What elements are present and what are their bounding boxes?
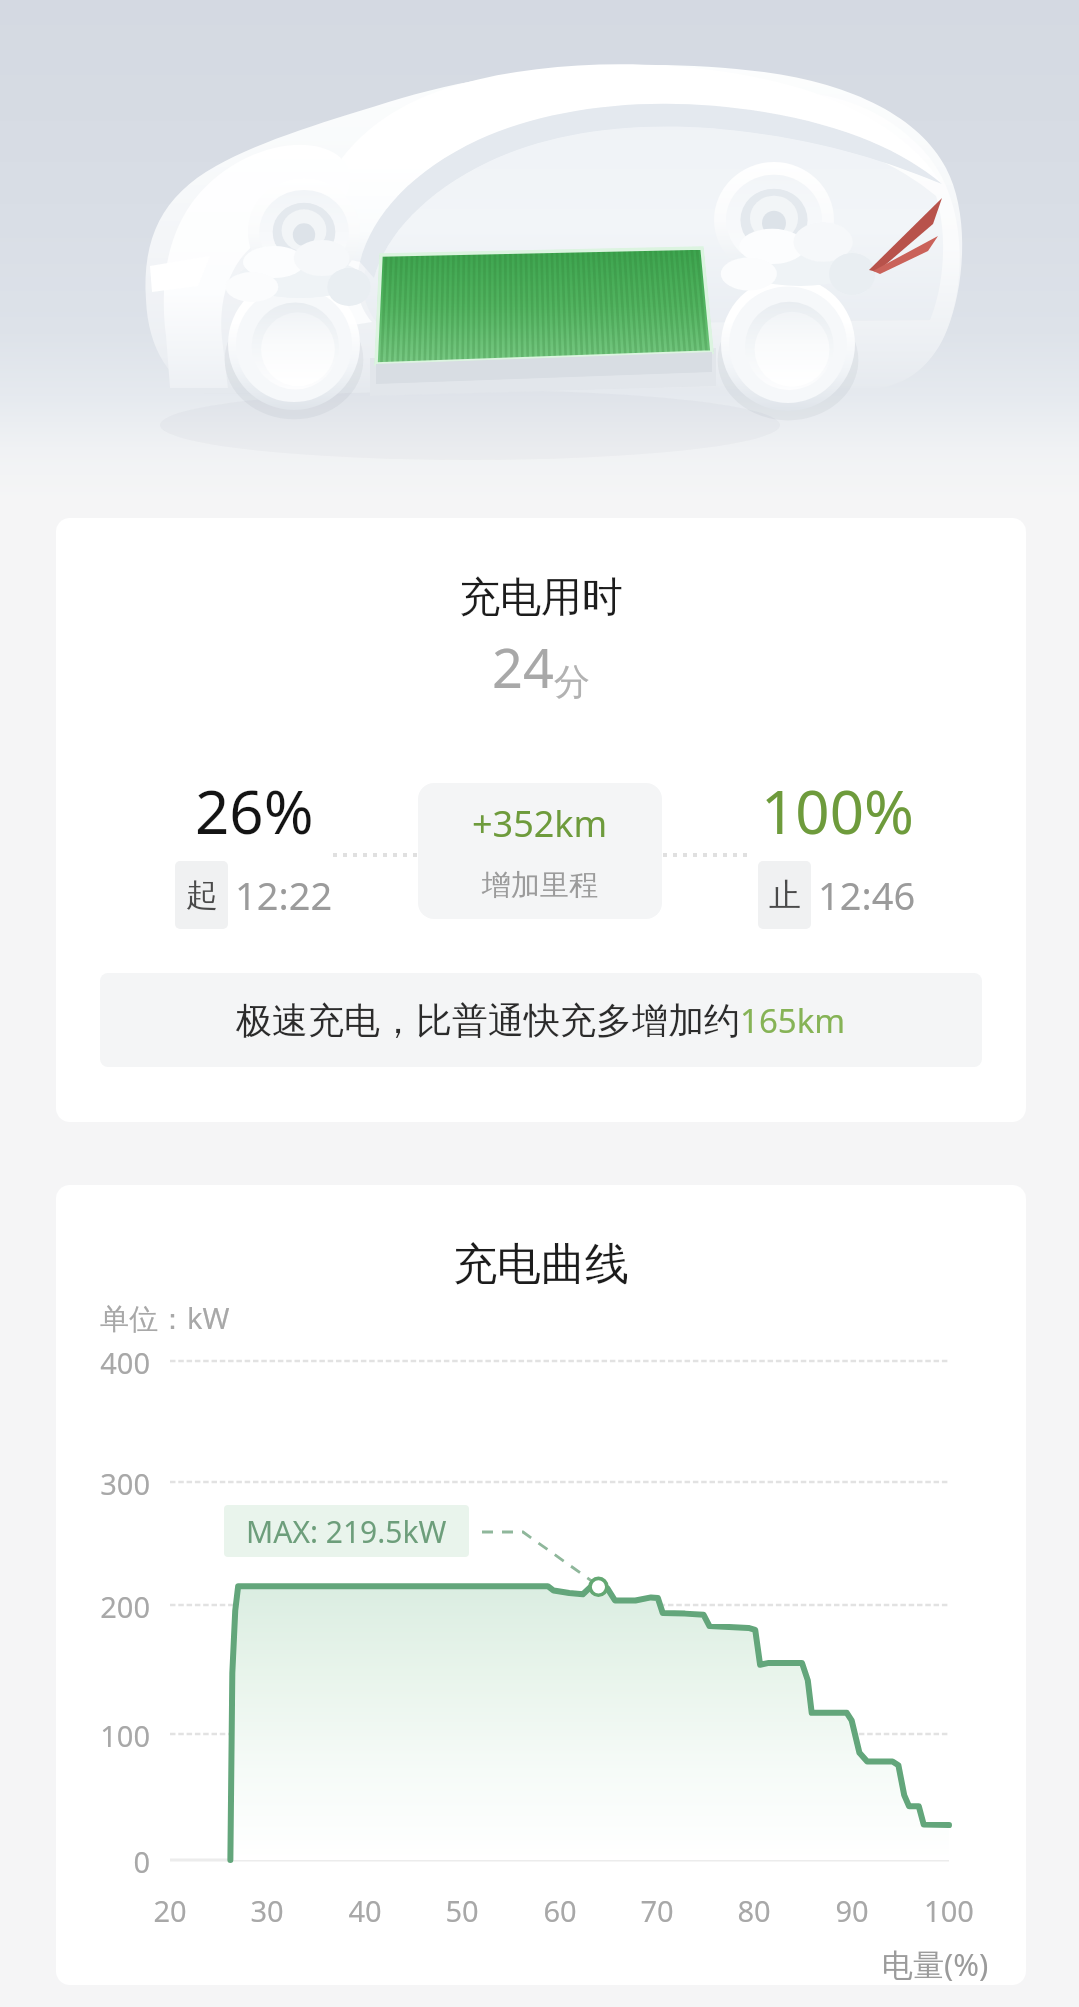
- staticText: 165km: [740, 998, 846, 1043]
- staticText: 充电用时: [56, 572, 1026, 624]
- staticText: 100: [904, 1891, 994, 1930]
- staticText: 70: [612, 1891, 702, 1930]
- button[interactable]: 充电曲线: [56, 1185, 1026, 1985]
- staticText: 24: [492, 630, 554, 704]
- staticText: 100%: [761, 770, 914, 852]
- staticText: 26%: [195, 770, 314, 852]
- staticText: 止: [769, 875, 801, 915]
- staticText: 极速充电，比普通快充多增加约: [236, 998, 740, 1043]
- staticText: MAX: 219.5kW: [246, 1511, 447, 1552]
- staticText: 200: [62, 1587, 150, 1626]
- staticText: 60: [515, 1891, 605, 1930]
- staticText: 充电曲线: [56, 1237, 1026, 1292]
- staticText: +352km: [472, 799, 608, 848]
- staticText: 单位：kW: [100, 1298, 230, 1338]
- button[interactable]: 充电用时: [56, 518, 1026, 1122]
- staticText: 电量(%): [882, 1943, 989, 1985]
- staticText: 40: [320, 1891, 410, 1930]
- staticText: 80: [709, 1891, 799, 1930]
- button[interactable]: Vehicle battery illustration: [0, 0, 1079, 500]
- staticText: 20: [125, 1891, 215, 1930]
- staticText: 30: [222, 1891, 312, 1930]
- staticText: 90: [807, 1891, 897, 1930]
- staticText: 50: [417, 1891, 507, 1930]
- staticText: 100: [62, 1716, 150, 1755]
- staticText: 0: [62, 1842, 150, 1881]
- staticText: 分: [554, 659, 590, 704]
- staticText: 300: [62, 1464, 150, 1503]
- staticText: 12:22: [235, 869, 333, 921]
- staticText: 起: [186, 875, 218, 915]
- staticText: 增加里程: [482, 867, 598, 904]
- staticText: 400: [62, 1343, 150, 1382]
- staticText: 12:46: [818, 869, 916, 921]
